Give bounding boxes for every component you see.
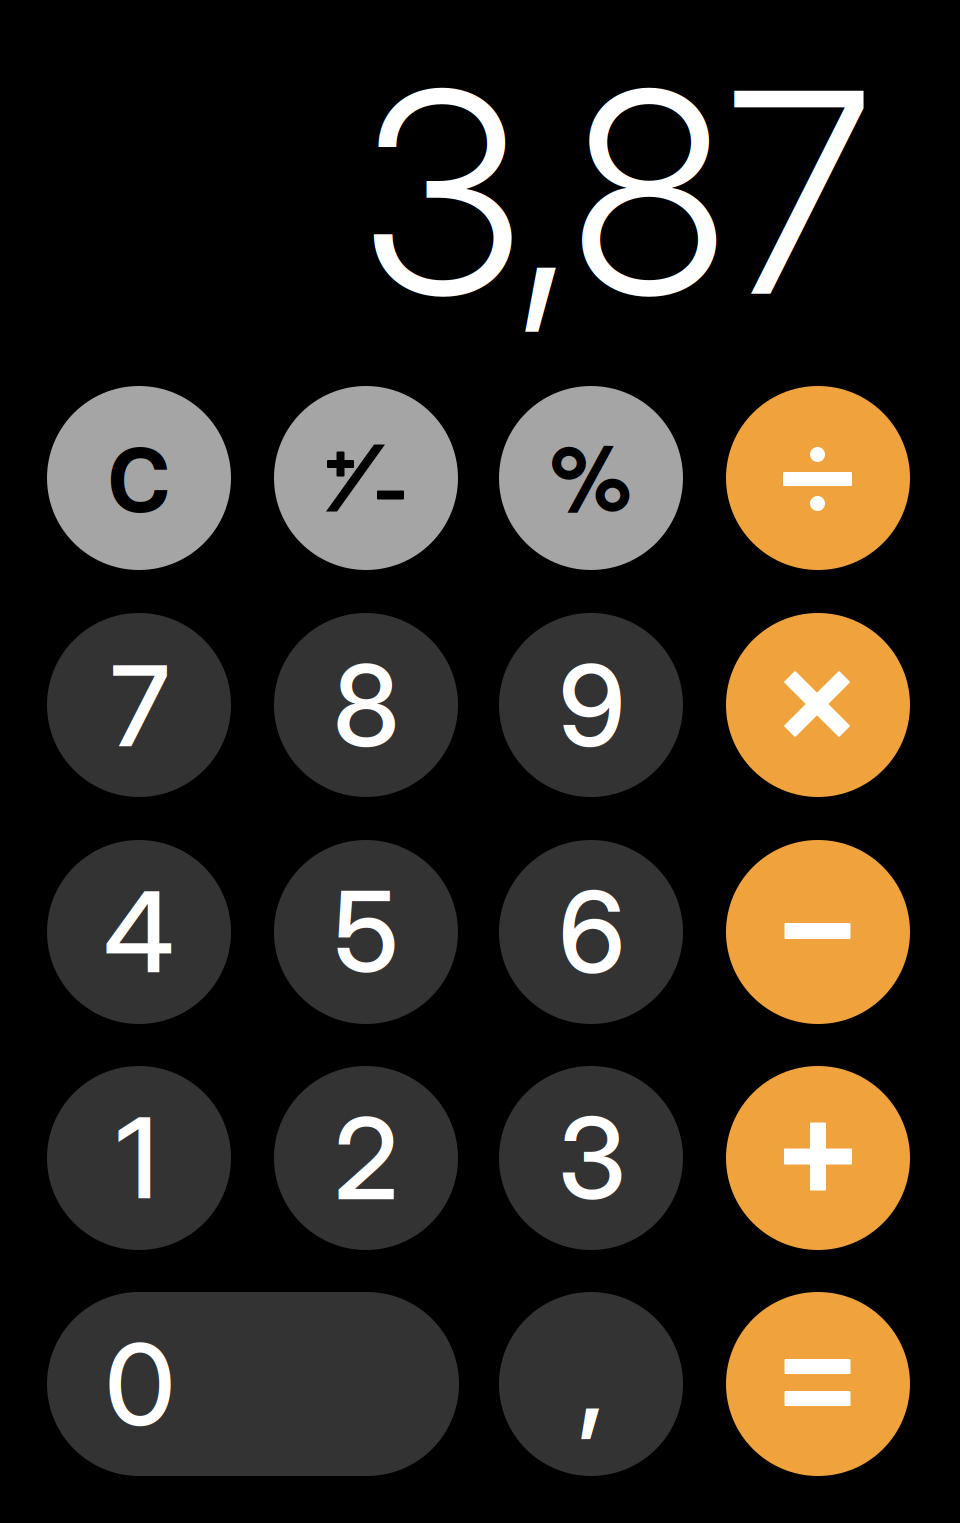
staticText: 2 xyxy=(334,1091,398,1226)
button[interactable]: 2 xyxy=(274,1066,458,1250)
staticText: 6 xyxy=(558,864,625,1000)
staticText: , xyxy=(578,1303,606,1451)
button[interactable]: C xyxy=(47,386,231,570)
staticText: 4 xyxy=(103,864,174,999)
button[interactable]: Multiply xyxy=(726,613,910,797)
button[interactable]: 4 xyxy=(47,840,231,1024)
button[interactable]: Divide xyxy=(726,386,910,570)
staticText: 8 xyxy=(333,638,399,773)
staticText: 7 xyxy=(110,638,169,773)
staticText: 3 xyxy=(558,1090,626,1226)
button[interactable]: Percent xyxy=(499,386,683,570)
button[interactable]: 6 xyxy=(499,840,683,1024)
button[interactable]: 5 xyxy=(274,840,458,1024)
button[interactable]: Minus xyxy=(726,840,910,1024)
button[interactable]: 9 xyxy=(499,613,683,797)
button[interactable]: Plus xyxy=(726,1066,910,1250)
staticText: C xyxy=(107,413,171,539)
staticText: 1 xyxy=(116,1090,158,1225)
button[interactable]: 0 xyxy=(47,1292,459,1476)
button[interactable]: 1 xyxy=(47,1066,231,1250)
button[interactable]: Decimal separator xyxy=(499,1292,683,1476)
staticText: 3,87 xyxy=(362,24,871,361)
button[interactable]: Equals xyxy=(726,1292,910,1476)
staticText: 0 xyxy=(105,1317,175,1452)
staticText: 5 xyxy=(333,863,398,999)
staticText: 9 xyxy=(558,638,625,773)
button[interactable]: 7 xyxy=(47,613,231,797)
staticText: % xyxy=(550,407,632,539)
button[interactable]: 8 xyxy=(274,613,458,797)
button[interactable]: 3 xyxy=(499,1066,683,1250)
button[interactable]: Plus minus xyxy=(274,386,458,570)
